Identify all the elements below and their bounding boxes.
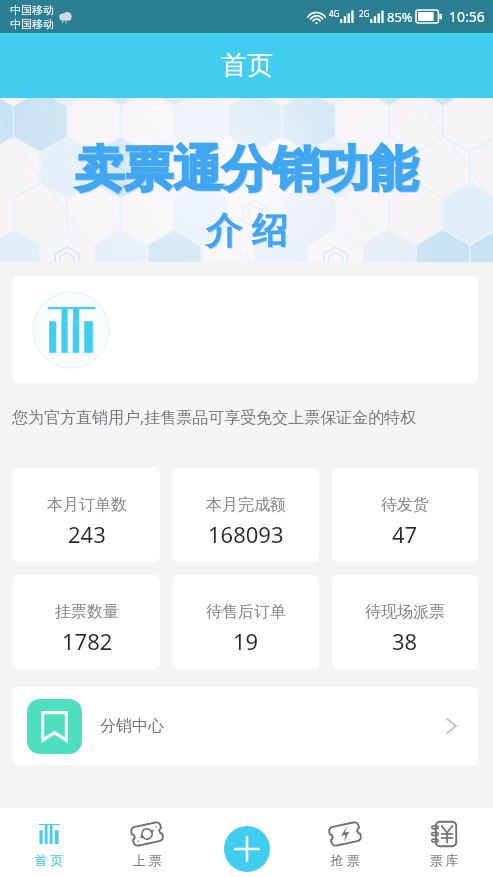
staticText: 中国移动 <box>10 3 54 17</box>
staticText: 47 <box>392 519 418 549</box>
staticText: 挂票数量 <box>55 602 119 622</box>
staticText: 243 <box>68 519 106 549</box>
staticText: 介 绍 <box>206 205 288 254</box>
staticText: 19 <box>233 626 259 656</box>
staticText: 待售后订单 <box>206 602 286 622</box>
staticText: 首页 <box>221 49 273 82</box>
button[interactable]: 本月完成额 <box>173 468 319 562</box>
staticText: 票库 <box>428 852 460 868</box>
button[interactable]: 待现场派票 <box>332 575 478 669</box>
staticText: 您为官方直销用户,挂售票品可享受免交上票保证金的特权 <box>12 406 417 428</box>
staticText: 卖票通分销功能 <box>75 139 418 201</box>
button[interactable]: 首页 <box>0 808 98 877</box>
staticText: 介 绍 <box>207 206 289 255</box>
staticText: 4G <box>329 8 340 19</box>
button[interactable]: 本月订单数 <box>13 468 160 562</box>
button[interactable]: 挂票数量 <box>13 575 160 669</box>
staticText: 待现场派票 <box>365 602 445 622</box>
staticText: 10:56 <box>449 7 485 26</box>
staticText: 85% <box>387 8 413 26</box>
button[interactable]: 分销中心 <box>13 687 478 765</box>
button[interactable]: Add <box>224 826 270 872</box>
staticText: 168093 <box>208 519 284 549</box>
button[interactable]: 抢票 <box>295 808 394 877</box>
staticText: 1782 <box>62 626 113 656</box>
button[interactable]: 待售后订单 <box>173 575 319 669</box>
staticText: 中国移动 <box>10 17 54 31</box>
staticText: 卖票通分销功能 <box>76 140 419 202</box>
staticText: 本月完成额 <box>206 495 286 515</box>
staticText: 抢票 <box>329 852 361 868</box>
staticText: 本月订单数 <box>47 495 127 515</box>
button[interactable]: 待发货 <box>332 468 478 562</box>
staticText: 2G <box>359 8 370 19</box>
staticText: 38 <box>392 626 418 656</box>
button[interactable]: 票库 <box>394 808 493 877</box>
button[interactable]: 上票 <box>98 808 196 877</box>
staticText: 上票 <box>131 852 163 868</box>
staticText: 首页 <box>33 852 65 868</box>
staticText: 分销中心 <box>100 716 164 736</box>
staticText: 待发货 <box>381 495 429 515</box>
